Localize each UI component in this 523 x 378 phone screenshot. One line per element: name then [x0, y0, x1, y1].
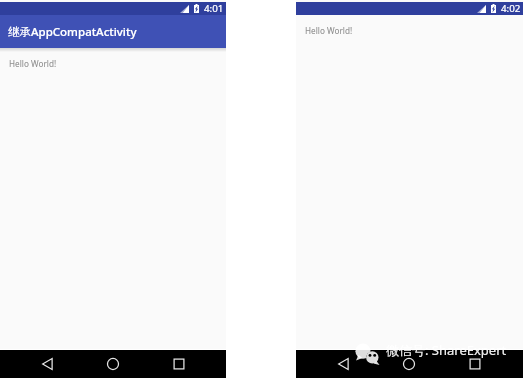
button[interactable]: Back — [37, 350, 57, 378]
staticText: 微信号: ShareExpert — [386, 341, 507, 359]
button[interactable]: Recents — [465, 350, 485, 378]
staticText: 继承AppCompatActivity — [8, 24, 137, 40]
button[interactable]: 继承AppCompatActivity — [0, 15, 226, 48]
button[interactable]: Home — [103, 350, 123, 378]
staticText: 4:01 — [204, 2, 224, 15]
button[interactable]: Recents — [169, 350, 189, 378]
staticText: Hello World! — [9, 58, 57, 69]
button[interactable]: Home — [399, 350, 419, 378]
button[interactable]: Back — [333, 350, 353, 378]
staticText: 4:02 — [501, 2, 521, 15]
staticText: Hello World! — [305, 25, 353, 36]
